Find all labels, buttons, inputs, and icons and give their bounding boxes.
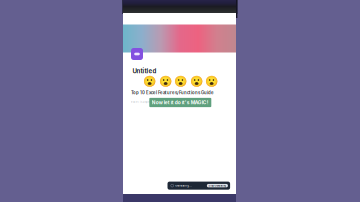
staticText: 😮 — [205, 75, 218, 87]
staticText: Generating... — [175, 184, 192, 187]
staticText: 😮 — [190, 75, 203, 87]
button[interactable]: Stop Generating — [207, 184, 228, 187]
staticText: Top 10 Excel Features/Functions Guide — [131, 90, 214, 95]
staticText: Untitled — [132, 67, 156, 75]
staticText: Now let it do it's MAGIC! — [152, 100, 209, 105]
staticText: Excel is a spreadsheet application .....… — [131, 100, 193, 104]
staticText: 😮 — [159, 75, 172, 87]
staticText: Stop Generating — [208, 184, 226, 187]
staticText: 😮 — [174, 75, 187, 87]
staticText: 😮 — [143, 75, 156, 87]
